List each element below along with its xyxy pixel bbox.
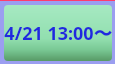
staticText: 4/21 13:00〜 [4,21,112,46]
button[interactable]: 4/21 13:00〜 [4,5,112,61]
